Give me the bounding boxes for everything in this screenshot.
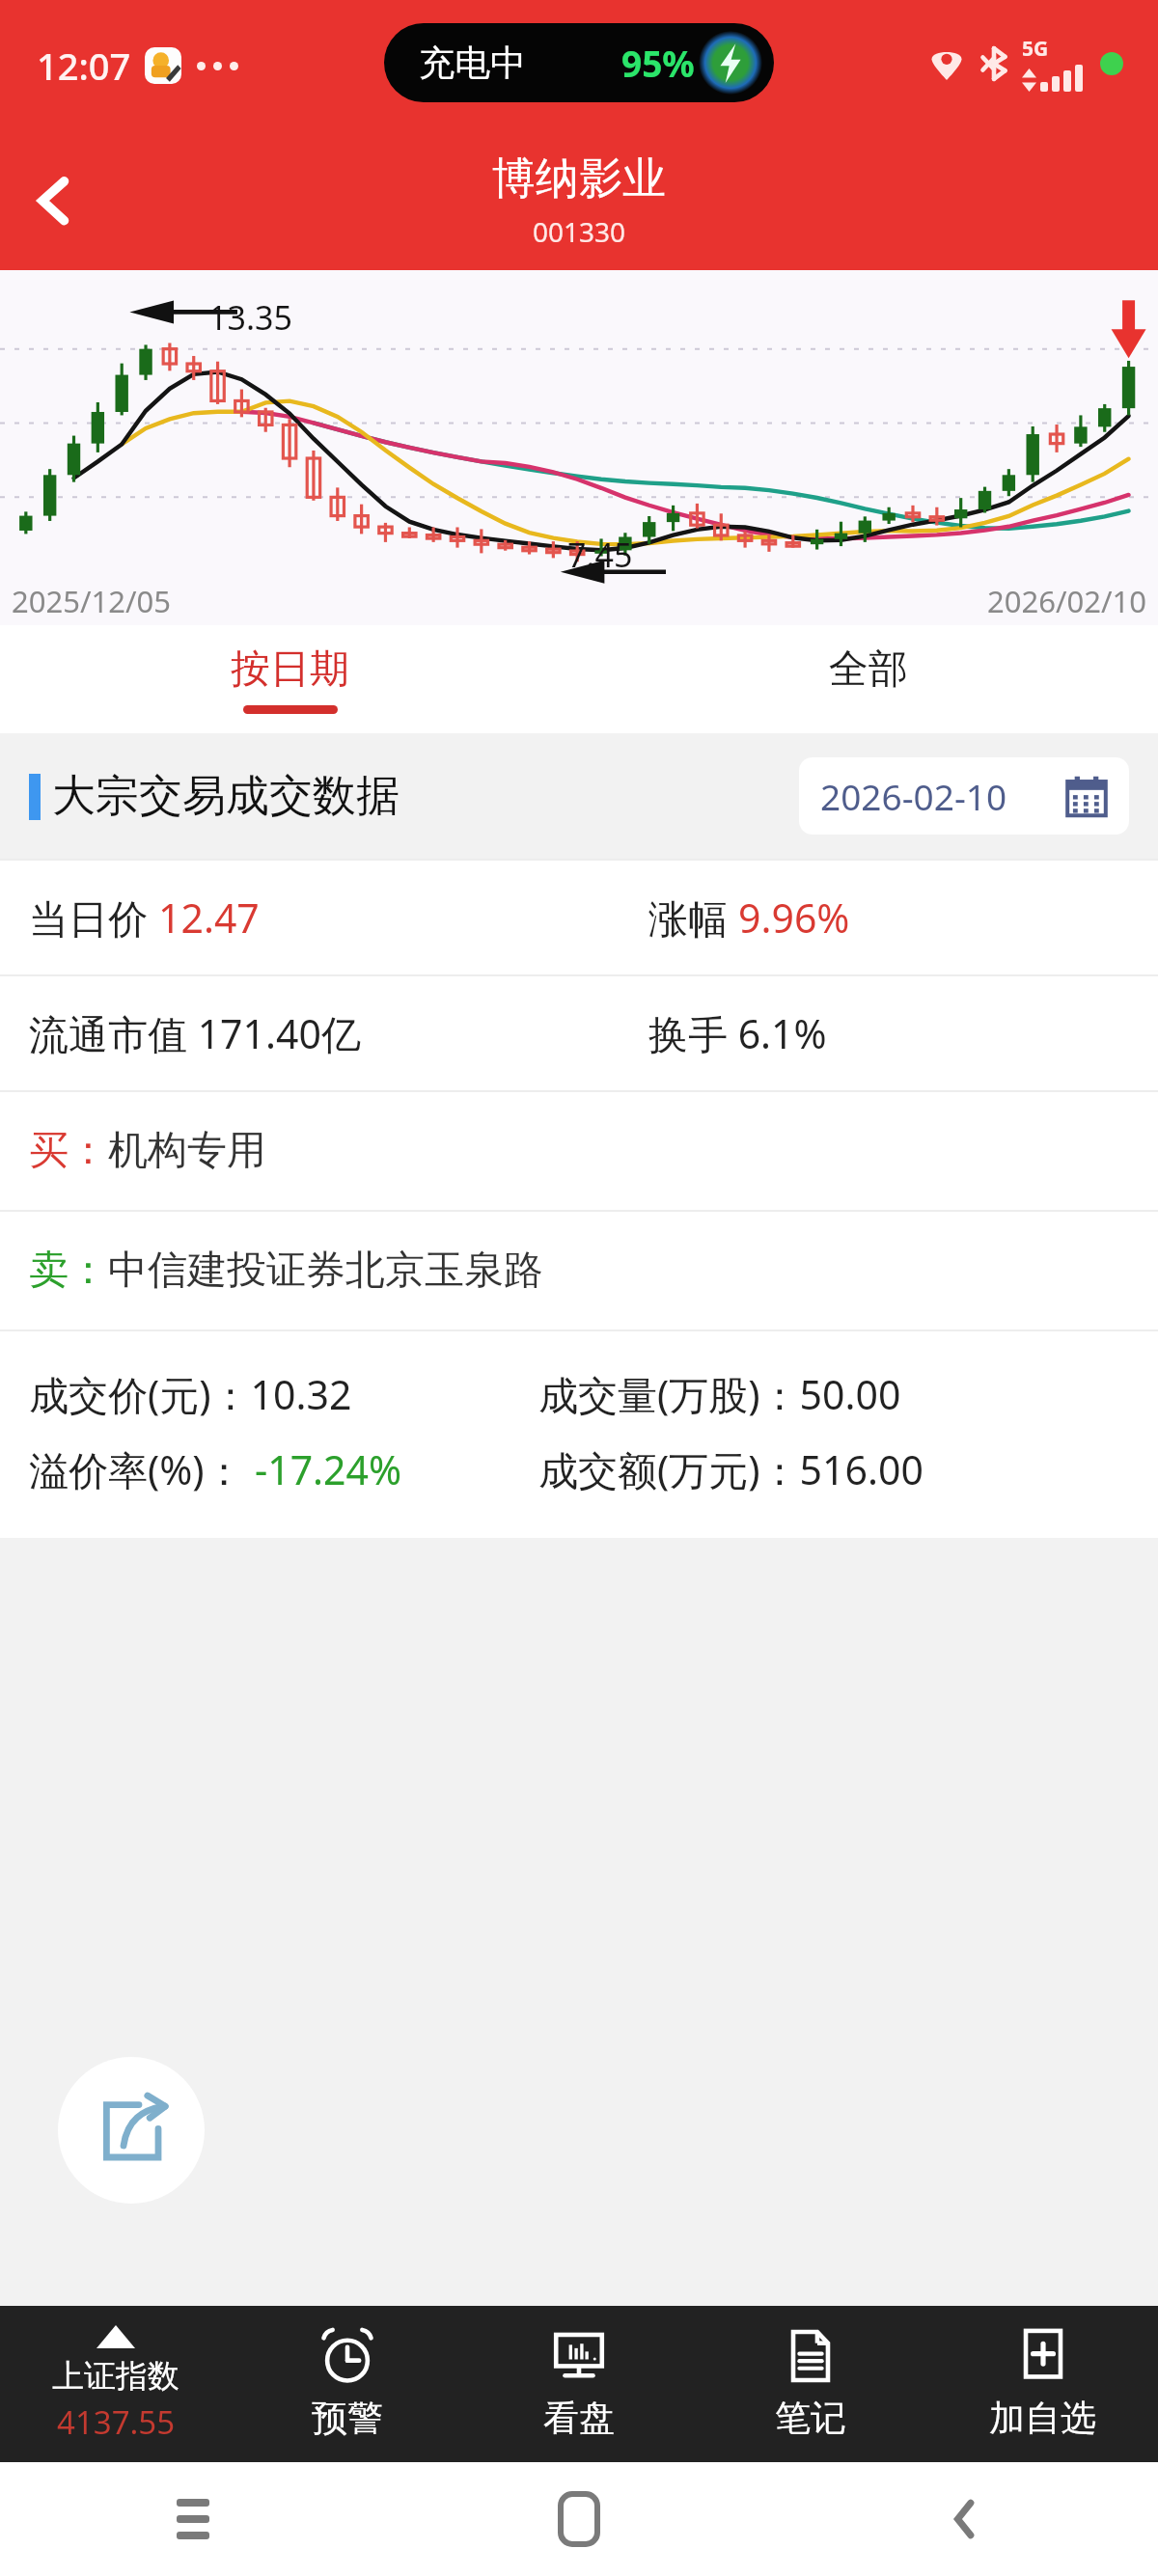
button[interactable]: 上证指数 [0, 2306, 232, 2462]
staticText: 涨幅 [648, 891, 738, 945]
button[interactable]: 买： [0, 1092, 1158, 1210]
staticText: 13.35 [208, 295, 292, 340]
staticText: 7.45 [567, 533, 633, 577]
staticText: 中信建投证券北京玉泉路 [108, 1246, 543, 1296]
button[interactable]: 当日价 [0, 861, 1158, 974]
staticText: -17.24% [255, 1442, 402, 1496]
staticText: 2026-02-10 [820, 772, 1007, 820]
button[interactable]: Back [0, 147, 108, 255]
button[interactable]: 全部 [579, 625, 1158, 733]
staticText: 4137.55 [57, 2400, 176, 2444]
staticText: 成交价(元)：10.32 [29, 1367, 352, 1421]
staticText: 换手 6.1% [648, 1006, 827, 1060]
staticText: 全部 [829, 644, 908, 695]
staticText: 成交量(万股)：50.00 [538, 1367, 901, 1421]
button[interactable]: 按日期 [0, 625, 579, 733]
button[interactable]: 看盘 [463, 2306, 695, 2462]
staticText: 上证指数 [52, 2356, 179, 2397]
staticText: 成交额(万元)：516.00 [538, 1442, 924, 1496]
button[interactable]: 卖： [0, 1212, 1158, 1329]
staticText: 流通市值 171.40亿 [29, 1006, 361, 1060]
staticText: 预警 [312, 2396, 383, 2441]
staticText: 机构专用 [108, 1126, 266, 1176]
button[interactable]: 预警 [232, 2306, 463, 2462]
staticText: 001330 [533, 213, 626, 250]
staticText: 按日期 [231, 644, 349, 695]
staticText: 2025/12/05 [12, 581, 171, 621]
staticText: 9.96% [738, 891, 850, 945]
button[interactable]: 2026-02-10 [799, 757, 1129, 835]
staticText: 看盘 [543, 2396, 615, 2441]
staticText: 卖： [29, 1246, 108, 1296]
staticText: 大宗交易成交数据 [52, 769, 400, 824]
button[interactable]: Share [58, 2057, 205, 2204]
staticText: 充电中 [419, 41, 526, 86]
staticText: 买： [29, 1126, 108, 1176]
staticText: 5G [1022, 35, 1049, 63]
staticText: 当日价 [29, 891, 158, 945]
staticText: 2026/02/10 [987, 581, 1146, 621]
button[interactable]: 笔记 [695, 2306, 926, 2462]
button[interactable]: 加自选 [926, 2306, 1158, 2462]
staticText: 笔记 [775, 2396, 846, 2441]
staticText: 加自选 [989, 2396, 1096, 2441]
button[interactable]: 流通市值 171.40亿 [0, 976, 1158, 1090]
staticText: 12:07 [37, 41, 131, 91]
staticText: 溢价率(%)： [29, 1442, 255, 1496]
staticText: 博纳影业 [492, 151, 666, 206]
staticText: 12.47 [158, 891, 260, 945]
staticText: 95% [621, 39, 695, 87]
